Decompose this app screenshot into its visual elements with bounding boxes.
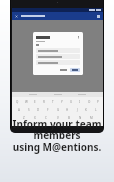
button[interactable]: K — [83, 107, 89, 112]
button[interactable]: D — [35, 107, 41, 112]
button[interactable]: T — [50, 99, 56, 104]
button[interactable]: A — [16, 107, 22, 112]
staticText: B — [68, 116, 70, 120]
button[interactable] — [36, 48, 80, 53]
button[interactable]: U — [68, 99, 74, 104]
button[interactable]: L — [93, 107, 99, 112]
staticText: O — [88, 100, 91, 104]
button[interactable]: R — [41, 99, 47, 104]
button[interactable]: J — [74, 107, 80, 112]
button[interactable] — [59, 68, 68, 72]
button[interactable]: Z — [21, 115, 27, 120]
button[interactable]: F — [45, 107, 51, 112]
button[interactable]: G — [55, 107, 61, 112]
staticText: Z — [23, 116, 25, 120]
staticText: H — [66, 108, 69, 112]
staticText: Y — [61, 100, 63, 104]
staticText: C — [45, 116, 47, 120]
staticText: I — [79, 100, 81, 104]
staticText: R — [43, 100, 45, 104]
staticText: Q — [16, 100, 19, 104]
button[interactable]: I — [77, 99, 83, 104]
button[interactable]: H — [64, 107, 70, 112]
staticText: A — [18, 108, 20, 112]
staticText: M — [90, 116, 93, 120]
staticText: S — [28, 108, 30, 112]
button[interactable]: S — [26, 107, 32, 112]
button[interactable]: More options — [96, 14, 101, 19]
button[interactable]: Y — [59, 99, 65, 104]
button[interactable]: B — [66, 115, 72, 120]
staticText: W — [25, 100, 28, 104]
button[interactable]: E — [32, 99, 38, 104]
staticText: G — [57, 108, 60, 112]
button[interactable]: M — [88, 115, 94, 120]
staticText: T — [52, 100, 54, 104]
staticText: X — [34, 116, 36, 120]
button[interactable]: P — [95, 99, 101, 104]
staticText: J — [77, 108, 78, 112]
staticText: U — [70, 100, 73, 104]
button[interactable]: O — [86, 99, 92, 104]
button[interactable] — [36, 54, 80, 59]
staticText: D — [37, 108, 40, 112]
button[interactable]: Q — [14, 99, 20, 104]
button[interactable]: Close — [14, 14, 19, 19]
button[interactable]: X — [32, 115, 38, 120]
staticText: F — [47, 108, 49, 112]
button[interactable]: W — [23, 99, 29, 104]
staticText: P — [97, 100, 99, 104]
button[interactable]: Voice input — [76, 35, 80, 39]
button[interactable]: V — [55, 115, 61, 120]
button[interactable]: N — [77, 115, 83, 120]
button[interactable] — [36, 60, 80, 65]
staticText: K — [85, 108, 87, 112]
button[interactable]: C — [43, 115, 49, 120]
staticText: V — [57, 116, 59, 120]
staticText: Inform your team members using M@entions… — [5, 117, 109, 154]
staticText: L — [95, 108, 97, 112]
staticText: N — [79, 116, 82, 120]
staticText: E — [34, 100, 36, 104]
button[interactable] — [70, 68, 80, 72]
